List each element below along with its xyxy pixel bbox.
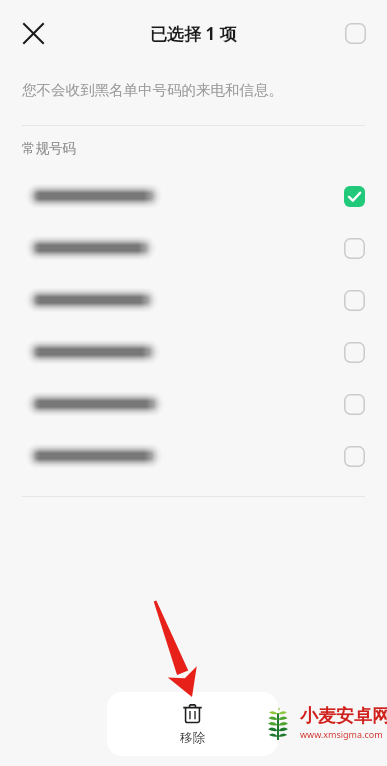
staticText: 您不会收到黑名单中号码的来电和信息。 (22, 81, 283, 99)
button[interactable]: 全选 (333, 11, 377, 55)
button[interactable] (0, 430, 387, 482)
staticText: www.xmsigma.com (300, 728, 383, 740)
button[interactable] (0, 170, 387, 222)
button[interactable] (0, 326, 387, 378)
button[interactable]: 移除 (107, 692, 278, 756)
staticText: 已选择 1 项 (150, 22, 237, 45)
button[interactable] (0, 222, 387, 274)
staticText: 小麦安卓网 (300, 705, 387, 728)
button[interactable] (0, 274, 387, 326)
staticText: 移除 (180, 730, 205, 746)
button[interactable]: 关闭 (10, 10, 56, 56)
button[interactable] (0, 378, 387, 430)
staticText: 常规号码 (22, 140, 76, 157)
other: 移除 (182, 703, 203, 724)
